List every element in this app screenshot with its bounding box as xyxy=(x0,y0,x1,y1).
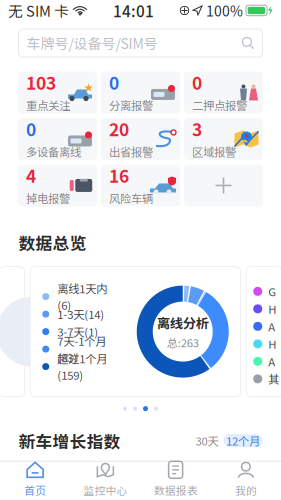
staticText: H xyxy=(268,336,276,352)
staticText: 4 xyxy=(26,163,36,188)
staticText: A xyxy=(268,318,275,334)
staticText: 7天-1个月(83) xyxy=(57,333,106,365)
button[interactable]: 20 xyxy=(101,118,180,160)
button[interactable]: 数据报表 xyxy=(140,461,211,500)
button[interactable]: 4 xyxy=(18,164,97,206)
staticText: 二押点报警 xyxy=(192,97,247,113)
staticText: H xyxy=(268,301,276,317)
staticText: 车牌号/设备号/SIM号 xyxy=(26,33,157,53)
staticText: 多设备离线 xyxy=(26,143,81,160)
button[interactable]: 12个月 xyxy=(223,434,262,447)
staticText: 重点关注 xyxy=(26,97,70,113)
staticText: 3-7天(1) xyxy=(57,323,98,340)
button[interactable]: 3 xyxy=(184,118,263,160)
staticText: 无 SIM 卡 xyxy=(8,0,69,21)
button[interactable]: 16 xyxy=(101,164,180,206)
staticText: G xyxy=(268,283,276,299)
staticText: 其 xyxy=(268,371,279,387)
button[interactable]: 车牌号/设备号/SIM号 xyxy=(18,29,262,57)
staticText: 数据总览 xyxy=(18,230,86,255)
staticText: A xyxy=(268,353,275,369)
staticText: 出省报警 xyxy=(109,143,153,160)
button[interactable]: 30天 xyxy=(190,434,223,447)
staticText: 掉电报警 xyxy=(26,190,70,206)
button[interactable]: 首页 xyxy=(0,461,70,500)
staticText: 风险车辆 xyxy=(109,190,153,206)
staticText: 离线分析 xyxy=(157,313,209,332)
button[interactable]: 我的 xyxy=(211,461,281,500)
staticText: 超过1个月(159) xyxy=(57,350,107,383)
staticText: 1-3天(14) xyxy=(57,306,104,322)
button[interactable]: 0 xyxy=(18,118,97,160)
button[interactable]: Add xyxy=(184,164,263,206)
button[interactable]: 0 xyxy=(184,71,263,113)
staticText: 数据报表 xyxy=(154,482,198,498)
staticText: 0 xyxy=(192,70,202,95)
staticText: 总:263 xyxy=(167,334,199,350)
staticText: 分离报警 xyxy=(109,97,153,113)
staticText: 16 xyxy=(109,163,129,188)
staticText: 0 xyxy=(26,116,36,141)
staticText: 100% xyxy=(206,0,243,21)
staticText: 0 xyxy=(109,70,119,95)
button[interactable]: 0 xyxy=(101,71,180,113)
staticText: 20 xyxy=(109,116,129,141)
button[interactable]: 监控中心 xyxy=(70,461,140,500)
staticText: 30天 xyxy=(195,432,218,449)
staticText: 12个月 xyxy=(226,432,260,449)
staticText: 我的 xyxy=(235,482,257,498)
staticText: 区域报警 xyxy=(192,143,236,160)
staticText: 3 xyxy=(192,116,202,141)
staticText: 离线1天内(6) xyxy=(57,280,107,313)
staticText: 103 xyxy=(26,70,56,95)
staticText: 14:01 xyxy=(113,0,154,22)
button[interactable]: 103 xyxy=(18,71,97,113)
staticText: 新车增长指数 xyxy=(18,429,120,453)
staticText: 监控中心 xyxy=(83,482,127,498)
staticText: 首页 xyxy=(24,482,46,498)
